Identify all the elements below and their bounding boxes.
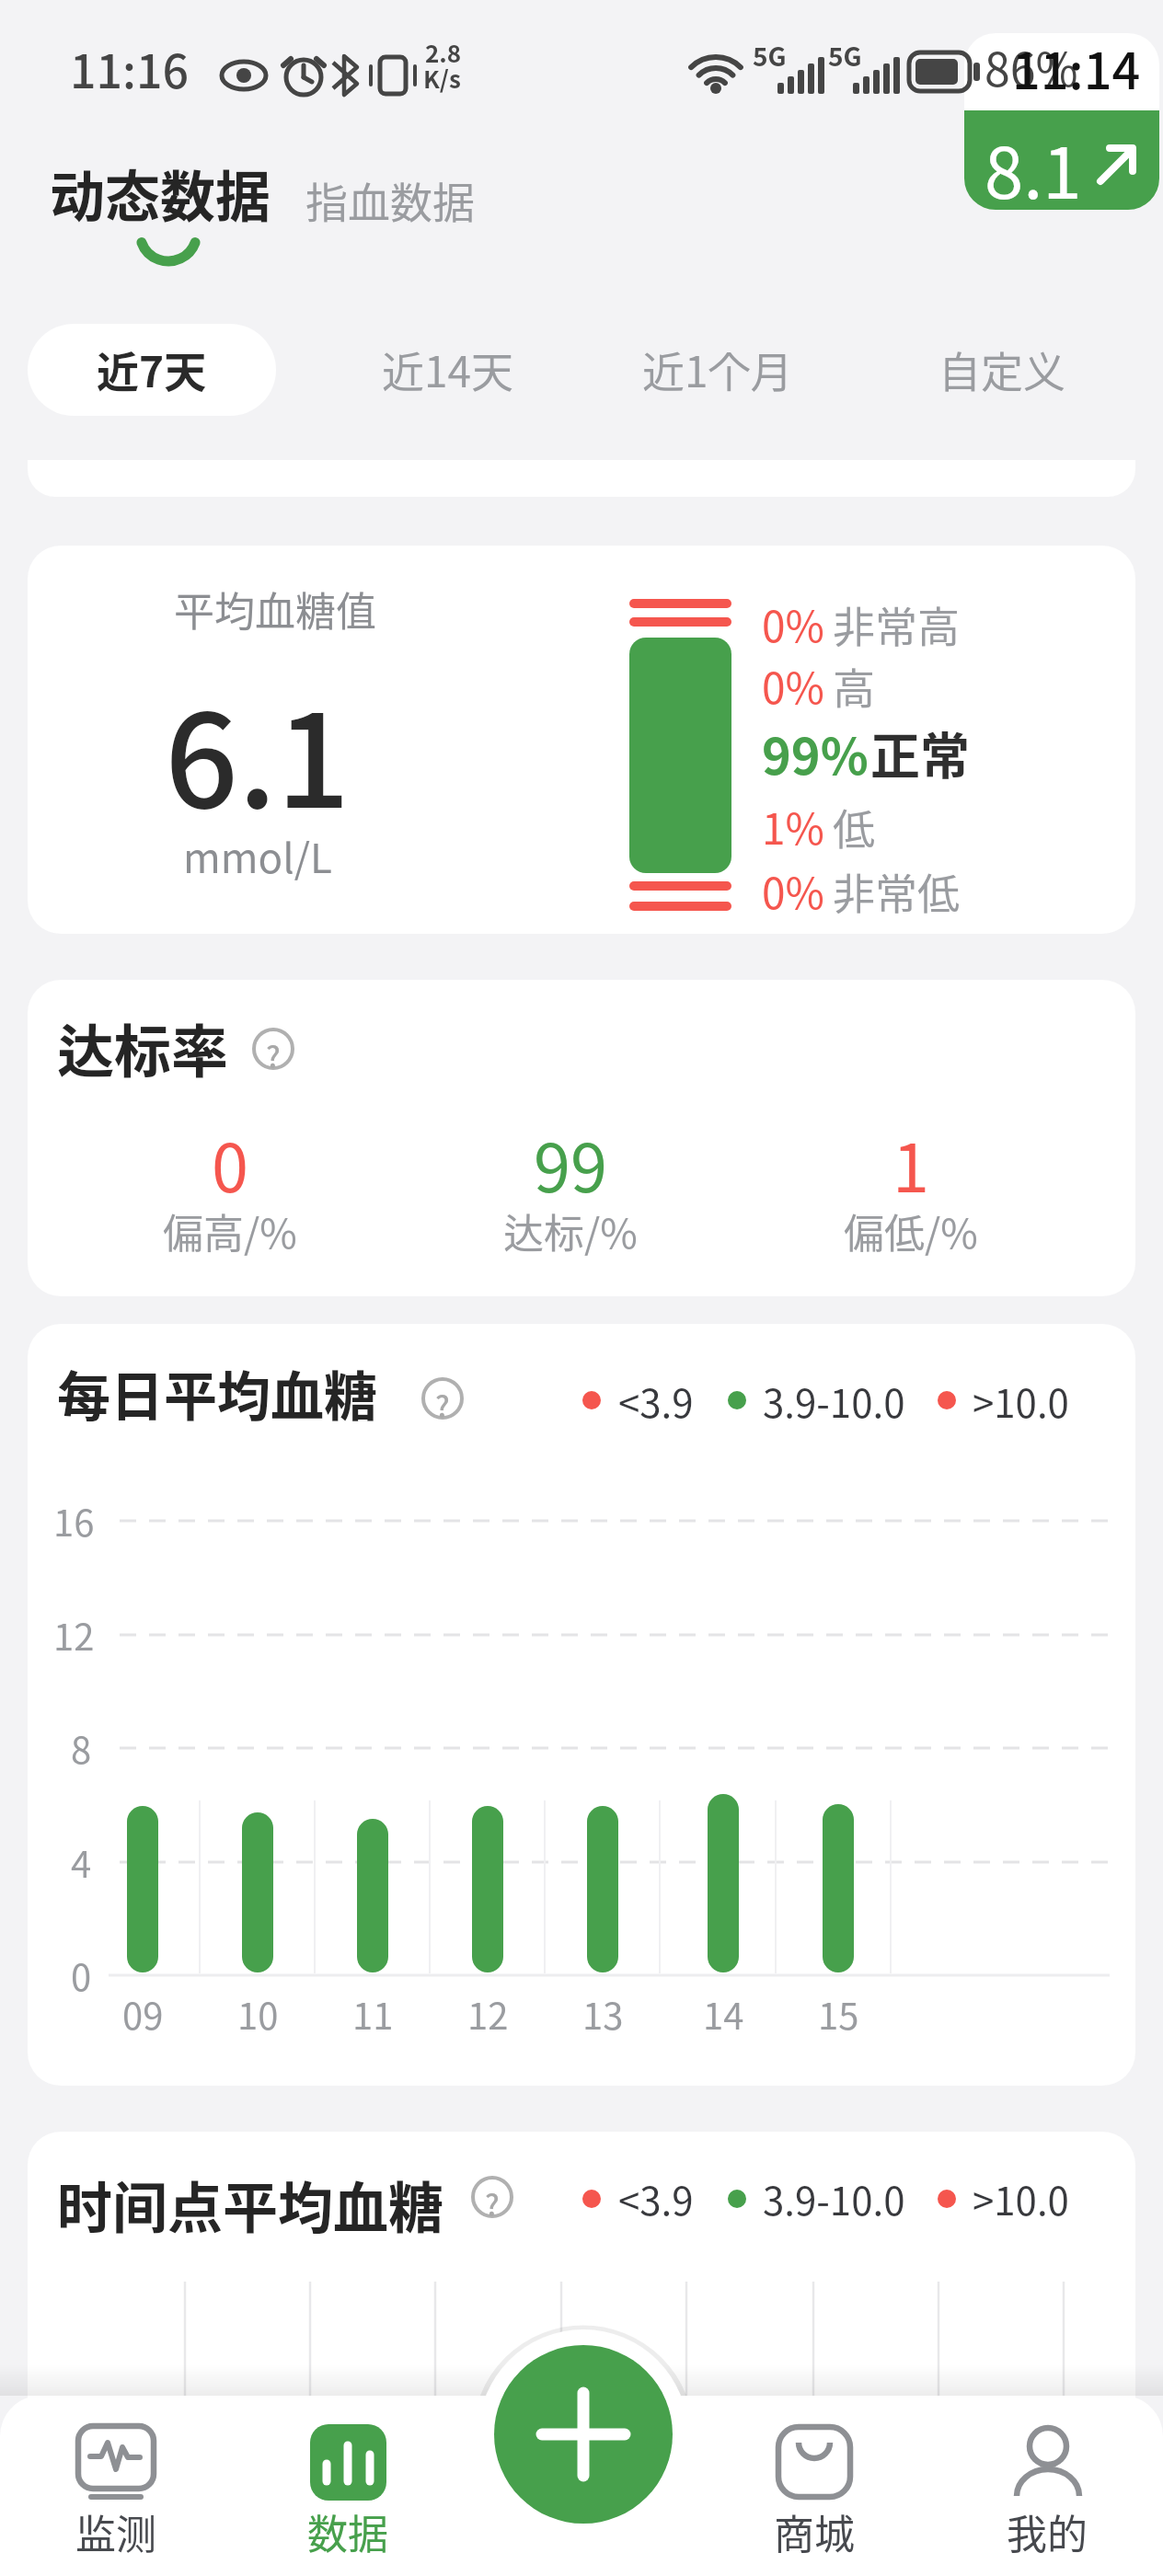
staticText: 5G bbox=[828, 37, 862, 75]
button[interactable] bbox=[28, 324, 276, 416]
staticText: 1% bbox=[762, 796, 824, 857]
button[interactable] bbox=[626, 324, 819, 416]
staticText: 达标率 bbox=[57, 1006, 229, 1089]
staticText: 12 bbox=[467, 1987, 509, 2041]
staticText: 正常 bbox=[870, 717, 970, 788]
staticText: ? bbox=[435, 1384, 450, 1426]
staticText: 4 bbox=[71, 1835, 92, 1889]
staticText: 8 bbox=[71, 1721, 92, 1775]
staticText: 平均血糖值 bbox=[174, 580, 376, 638]
staticText: 86% bbox=[985, 33, 1078, 99]
staticText: 动态数据 bbox=[50, 153, 271, 233]
staticText: <3.9 bbox=[618, 1373, 694, 1429]
staticText: 11 bbox=[352, 1987, 394, 2041]
staticText: ? bbox=[485, 2182, 500, 2225]
staticText: 时间点平均血糖 bbox=[57, 2164, 443, 2244]
staticText: 偏高/% bbox=[163, 1202, 297, 1260]
staticText: 6.1 bbox=[165, 659, 351, 845]
staticText: 商城 bbox=[774, 2502, 855, 2561]
button[interactable] bbox=[722, 2410, 906, 2576]
staticText: 近7天 bbox=[97, 339, 207, 400]
staticText: 99% bbox=[762, 717, 869, 788]
staticText: 11:14 bbox=[1012, 31, 1141, 103]
staticText: 高 bbox=[833, 655, 875, 717]
staticText: mmol/L bbox=[183, 826, 332, 885]
staticText: 自定义 bbox=[938, 339, 1065, 400]
staticText: 达标/% bbox=[503, 1202, 638, 1260]
staticText: 15 bbox=[818, 1987, 859, 2041]
staticText: 监测 bbox=[75, 2502, 156, 2561]
staticText: 2.8 bbox=[425, 35, 462, 70]
staticText: 12 bbox=[53, 1608, 95, 1662]
staticText: >10.0 bbox=[973, 1373, 1069, 1429]
staticText: K/s bbox=[423, 61, 461, 96]
button[interactable] bbox=[494, 2345, 673, 2524]
staticText: 0% bbox=[762, 593, 824, 655]
staticText: 0 bbox=[212, 1115, 248, 1211]
staticText: 3.9-10.0 bbox=[763, 2170, 905, 2226]
staticText: 13 bbox=[582, 1987, 624, 2041]
staticText: <3.9 bbox=[618, 2170, 694, 2226]
staticText: ? bbox=[266, 1034, 281, 1076]
staticText: 16 bbox=[53, 1494, 95, 1547]
button[interactable] bbox=[964, 110, 1159, 210]
staticText: 数据 bbox=[307, 2502, 388, 2561]
staticText: 99 bbox=[534, 1115, 607, 1211]
button[interactable] bbox=[955, 2410, 1139, 2576]
button[interactable] bbox=[929, 324, 1086, 416]
staticText: 0% bbox=[762, 860, 824, 922]
staticText: 非常低 bbox=[833, 860, 960, 922]
staticText: 0% bbox=[762, 655, 824, 717]
staticText: 1 bbox=[892, 1115, 929, 1211]
staticText: 11:16 bbox=[70, 35, 189, 101]
staticText: 我的 bbox=[1007, 2502, 1088, 2561]
staticText: 近14天 bbox=[382, 339, 514, 400]
staticText: 指血数据 bbox=[305, 169, 475, 231]
button[interactable] bbox=[256, 2410, 440, 2576]
button[interactable] bbox=[359, 324, 543, 416]
staticText: 3.9-10.0 bbox=[763, 1373, 905, 1429]
staticText: 非常高 bbox=[833, 593, 960, 655]
staticText: >10.0 bbox=[973, 2170, 1069, 2226]
staticText: 低 bbox=[833, 796, 875, 857]
staticText: 每日平均血糖 bbox=[57, 1354, 378, 1432]
staticText: 5G bbox=[753, 37, 787, 75]
staticText: 09 bbox=[122, 1987, 164, 2041]
staticText: 偏低/% bbox=[844, 1202, 978, 1260]
staticText: 8.1 bbox=[985, 118, 1082, 219]
staticText: 近1个月 bbox=[642, 339, 793, 400]
staticText: 10 bbox=[237, 1987, 279, 2041]
staticText: 14 bbox=[703, 1987, 744, 2041]
button[interactable] bbox=[24, 2410, 208, 2576]
staticText: 0 bbox=[71, 1949, 92, 2002]
